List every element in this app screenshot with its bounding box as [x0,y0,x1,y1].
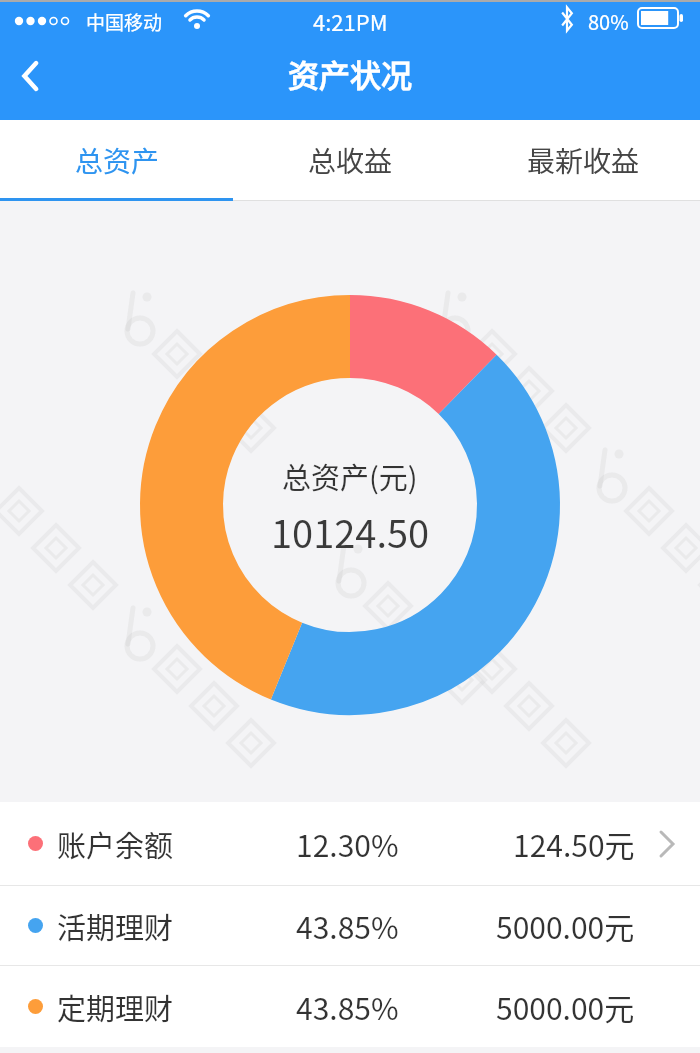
staticText: 124.50元 [513,822,635,865]
staticText: 5000.00元 [496,985,635,1028]
staticText: 12.30% [296,822,399,865]
staticText: 4:21PM [313,5,388,37]
staticText: 资产状况 [288,51,412,96]
staticText: 5000.00元 [496,904,635,947]
staticText: 最新收益 [527,140,640,181]
button[interactable]: 总收益 [234,120,467,201]
staticText: 43.85% [296,985,399,1028]
staticText: 总资产(元) [282,455,418,497]
staticText: 总收益 [308,140,393,181]
staticText: 10124.50 [271,504,430,554]
staticText: 80% [588,7,629,36]
button[interactable]: 最新收益 [467,120,700,201]
staticText: 总资产 [75,140,160,181]
button[interactable]: 活期理财 [0,886,700,965]
staticText: 43.85% [296,904,399,947]
staticText: 中国移动 [86,8,163,36]
staticText: 定期理财 [57,986,174,1028]
button[interactable]: 总资产 [0,120,234,201]
button[interactable]: 定期理财 [0,966,700,1047]
staticText: 账户余额 [57,823,174,865]
staticText: 活期理财 [57,905,174,947]
button[interactable]: 账户余额 [0,802,700,885]
button[interactable] [16,59,44,93]
